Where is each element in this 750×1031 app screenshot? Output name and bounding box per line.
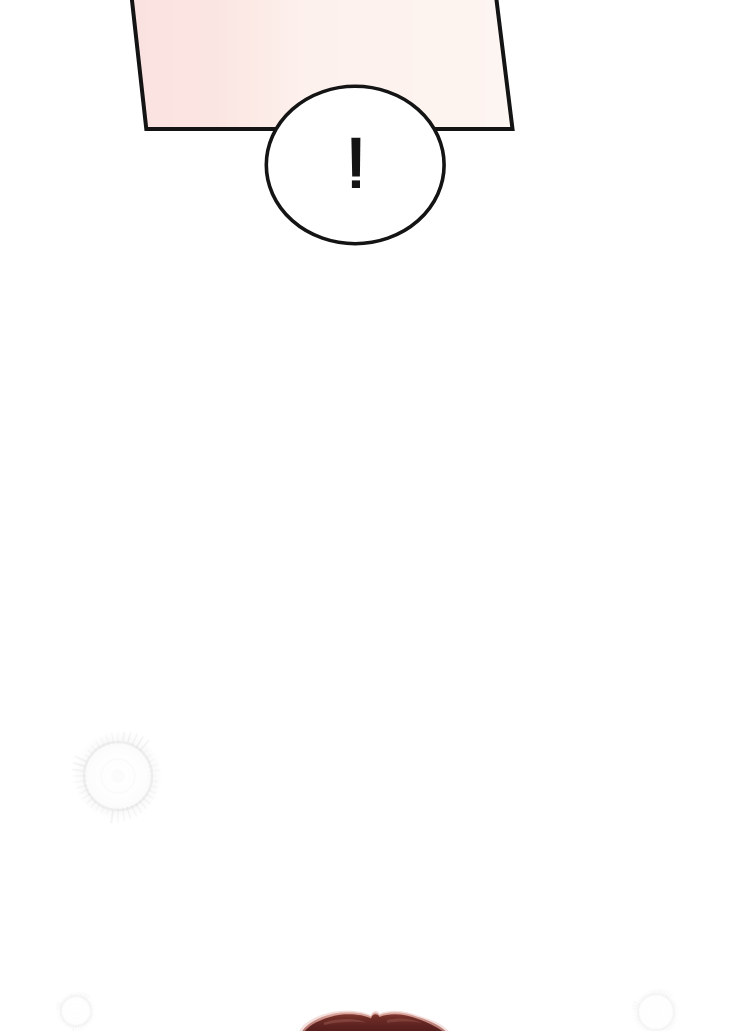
button[interactable]: Comic panel	[0, 0, 750, 1031]
